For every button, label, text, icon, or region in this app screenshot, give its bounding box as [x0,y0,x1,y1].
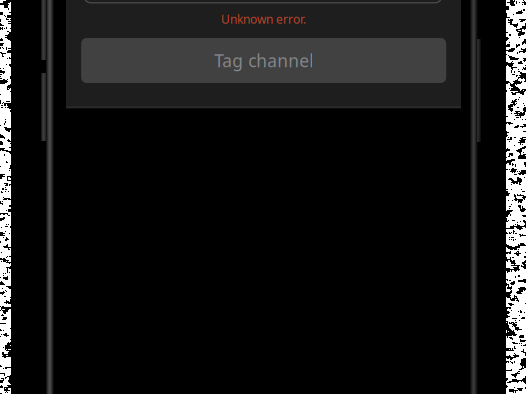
staticText: Unknown error. [221,11,306,27]
staticText: Tag channel [214,49,313,72]
button[interactable]: Tag channel [81,38,446,83]
